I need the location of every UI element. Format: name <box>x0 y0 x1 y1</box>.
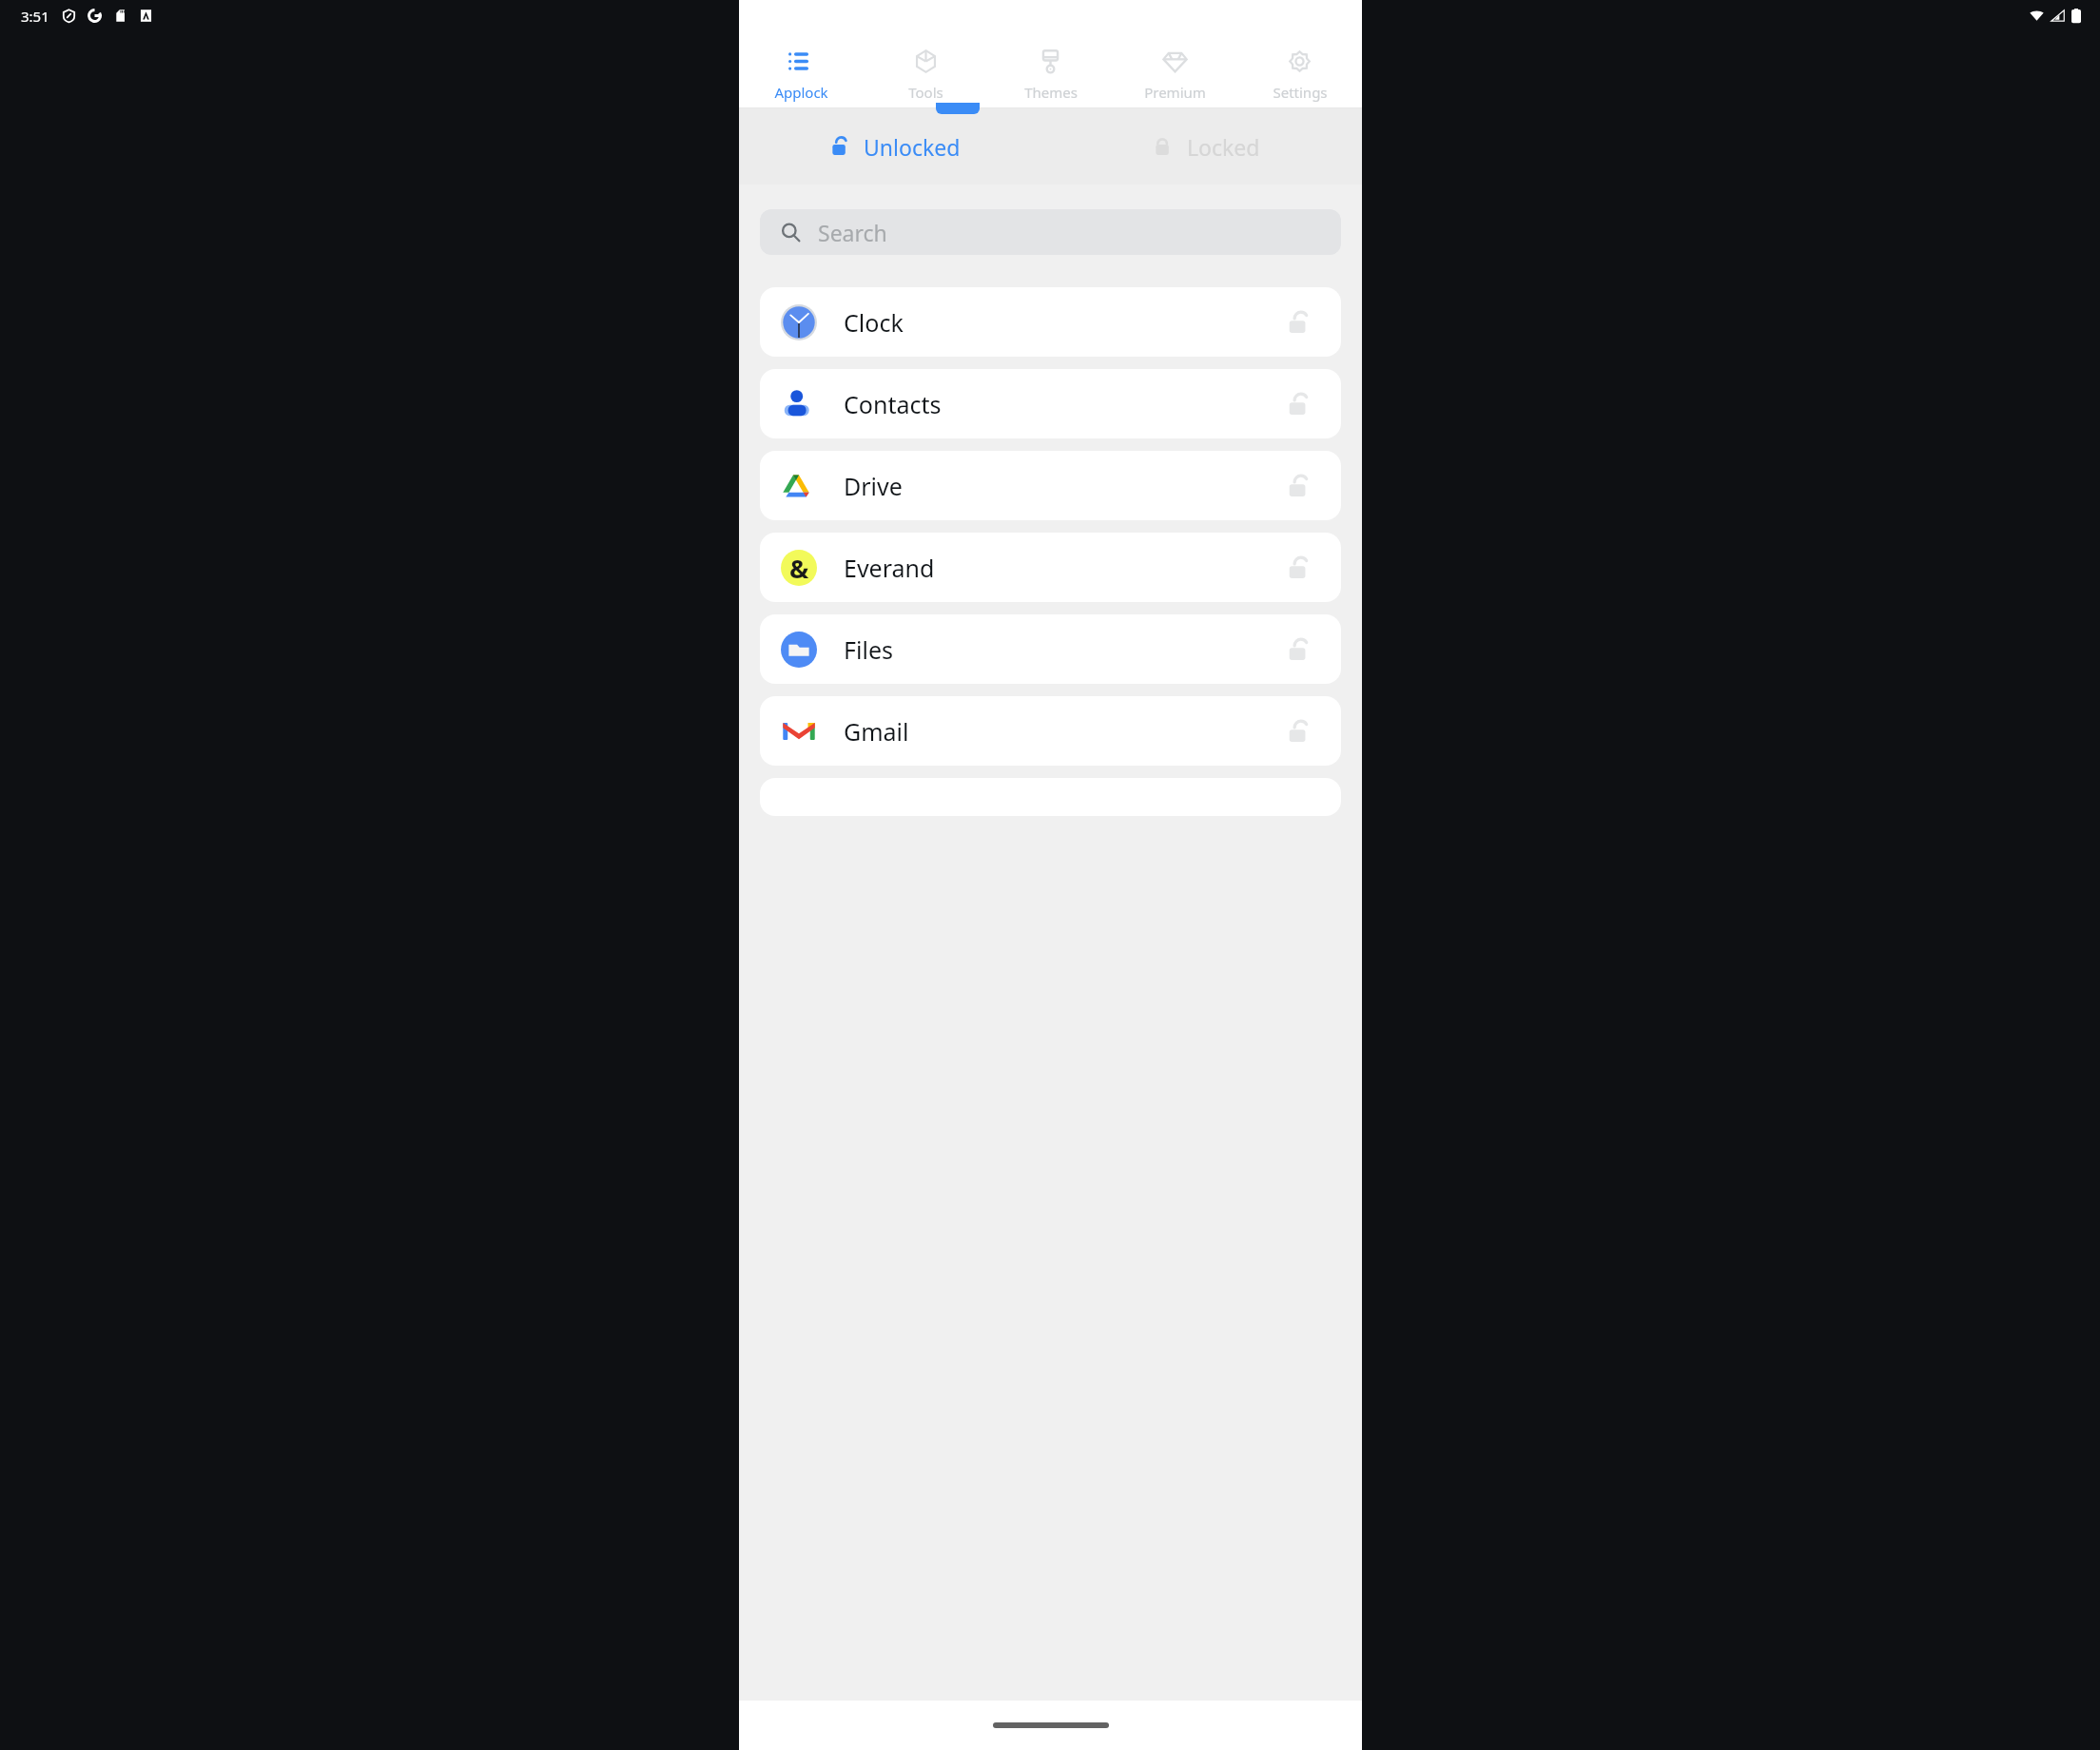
staticText: Applock <box>774 83 828 102</box>
staticText: Files <box>844 633 1282 666</box>
staticText: & <box>789 551 809 586</box>
button[interactable]: Drive <box>760 451 1341 520</box>
button[interactable]: Unlocked Gmail <box>1282 714 1316 749</box>
button[interactable]: Unlocked Drive <box>1282 469 1316 503</box>
button[interactable]: Unlocked Everand <box>1282 551 1316 585</box>
staticText: Locked <box>1187 132 1260 162</box>
staticText: Clock <box>844 306 1282 339</box>
button[interactable]: Files <box>760 614 1341 684</box>
staticText: Everand <box>844 552 1282 584</box>
staticText: 3:51 <box>21 7 49 26</box>
staticText: Settings <box>1273 83 1328 102</box>
button[interactable]: Premium <box>1113 31 1237 108</box>
staticText: Premium <box>1144 83 1206 102</box>
staticText: Themes <box>1024 83 1078 102</box>
button[interactable]: & <box>760 533 1341 602</box>
button[interactable]: Clock <box>760 287 1341 357</box>
button[interactable]: Contacts <box>760 369 1341 438</box>
staticText: Tools <box>908 83 943 102</box>
button[interactable]: Unlocked Clock <box>1282 305 1316 340</box>
staticText: Search <box>818 218 887 247</box>
button[interactable]: Search <box>760 209 1341 255</box>
button[interactable]: Unlocked Contacts <box>1282 387 1316 421</box>
button[interactable]: Unlocked <box>739 108 1050 185</box>
button[interactable]: Tools <box>864 31 988 108</box>
button[interactable]: Themes <box>988 31 1113 108</box>
button[interactable]: Gmail <box>760 696 1341 766</box>
button[interactable]: Unlocked Files <box>1282 632 1316 667</box>
button[interactable]: Applock <box>739 31 864 108</box>
staticText: Gmail <box>844 715 1282 748</box>
button[interactable]: Settings <box>1237 31 1362 108</box>
staticText: Drive <box>844 470 1282 502</box>
staticText: Unlocked <box>864 132 961 162</box>
staticText: Contacts <box>844 388 1282 420</box>
